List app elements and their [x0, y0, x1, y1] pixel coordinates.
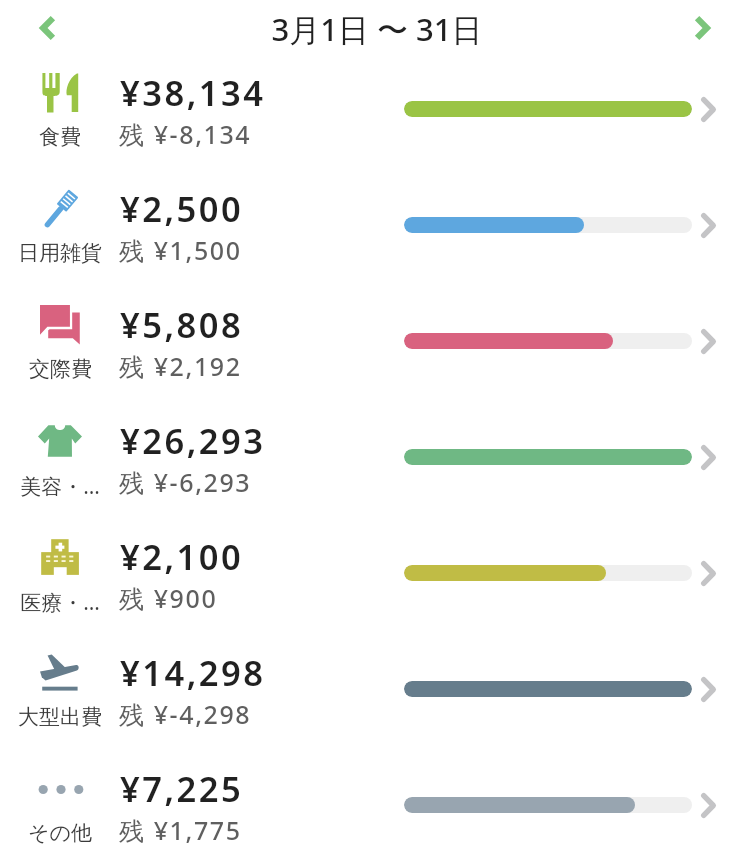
staticText: ¥2,100 [120, 533, 244, 580]
staticText: ¥14,298 [120, 649, 266, 696]
button[interactable]: 日用雑貨 [0, 167, 750, 283]
staticText: ¥5,808 [120, 301, 244, 348]
staticText: 美容・… [20, 472, 100, 501]
staticText: 日用雑貨 [18, 240, 102, 266]
staticText: 残 ¥2,192 [119, 349, 242, 383]
staticText: ¥26,293 [120, 417, 266, 464]
button[interactable]: 医療・… [0, 515, 750, 631]
staticText: 3月1日 〜 31日 [271, 8, 483, 50]
button[interactable]: 美容・… [0, 399, 750, 515]
button[interactable]: Previous period [20, 2, 76, 53]
button[interactable]: その他 [0, 747, 750, 854]
staticText: 大型出費 [18, 704, 102, 730]
staticText: ¥38,134 [120, 69, 266, 116]
button[interactable]: 大型出費 [0, 631, 750, 747]
button[interactable]: 交際費 [0, 283, 750, 399]
staticText: 残 ¥1,500 [119, 233, 242, 267]
staticText: 残 ¥1,775 [119, 813, 242, 847]
staticText: 食費 [39, 124, 81, 150]
staticText: 残 ¥-8,134 [119, 117, 252, 151]
staticText: 残 ¥-4,298 [119, 697, 252, 731]
staticText: ¥2,500 [120, 185, 244, 232]
staticText: 残 ¥900 [119, 581, 218, 615]
staticText: その他 [28, 820, 92, 846]
button[interactable]: 食費 [0, 51, 750, 167]
staticText: 残 ¥-6,293 [119, 465, 252, 499]
staticText: 医療・… [20, 588, 100, 617]
staticText: 交際費 [29, 356, 92, 382]
staticText: ¥7,225 [120, 765, 244, 812]
button[interactable]: Next period [674, 2, 730, 53]
